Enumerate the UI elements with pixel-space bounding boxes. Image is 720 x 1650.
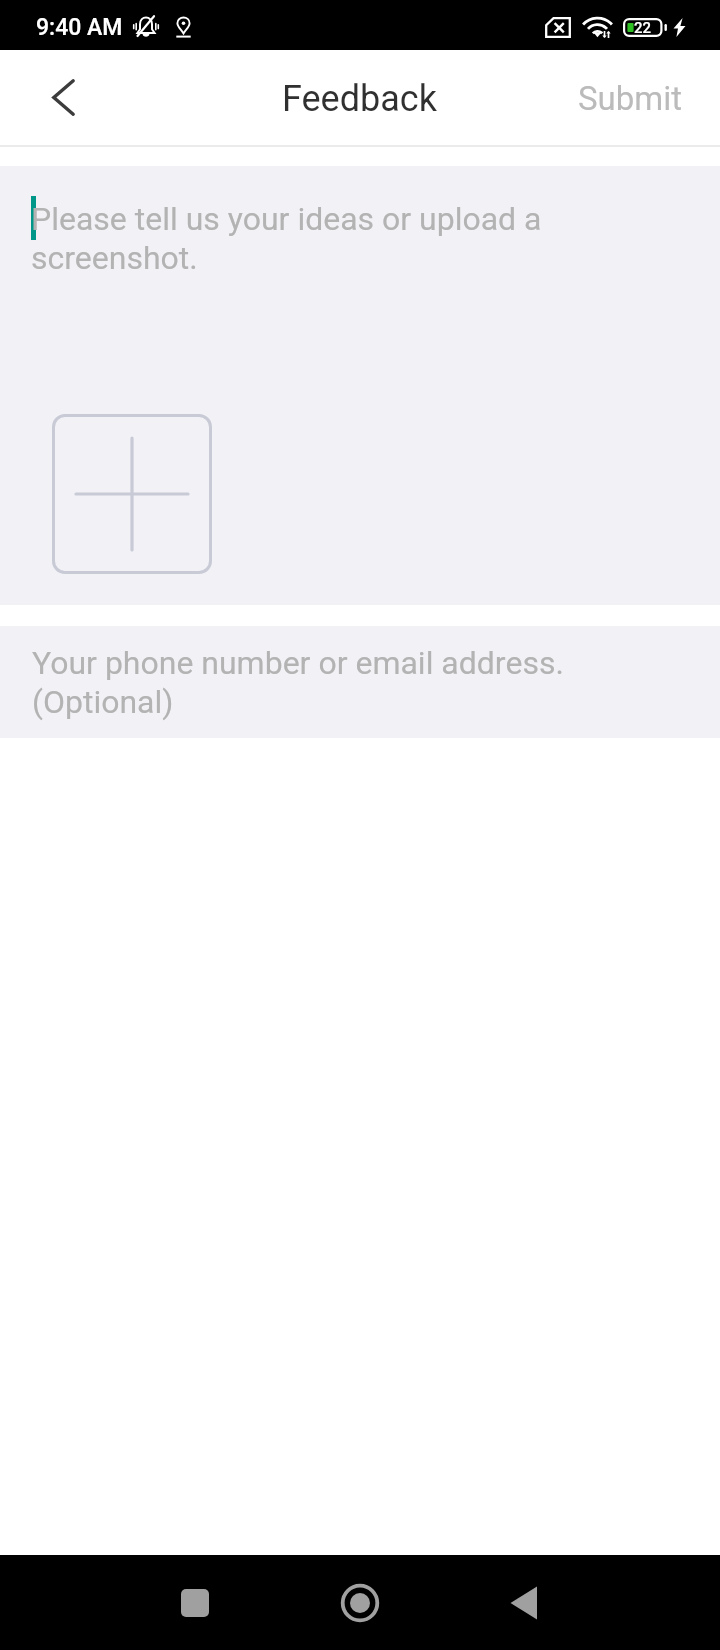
staticText: Your phone number or email address. (Opt… (32, 644, 607, 721)
button[interactable]: Back (476, 1555, 570, 1650)
button[interactable]: Your phone number or email address. (Opt… (0, 626, 720, 738)
staticText: Submit (578, 79, 683, 118)
button[interactable]: Submit (557, 58, 720, 137)
staticText: Please tell us your ideas or upload a sc… (31, 200, 576, 277)
button[interactable]: Home (313, 1555, 407, 1650)
button[interactable]: Back (0, 50, 126, 145)
button[interactable]: Recent apps (148, 1555, 242, 1650)
staticText: 9:40 AM (36, 14, 123, 41)
button[interactable]: Add screenshot (52, 414, 212, 574)
button[interactable]: Please tell us your ideas or upload a sc… (0, 166, 720, 605)
staticText: Feedback (282, 78, 437, 120)
staticText: 22 (634, 19, 652, 37)
